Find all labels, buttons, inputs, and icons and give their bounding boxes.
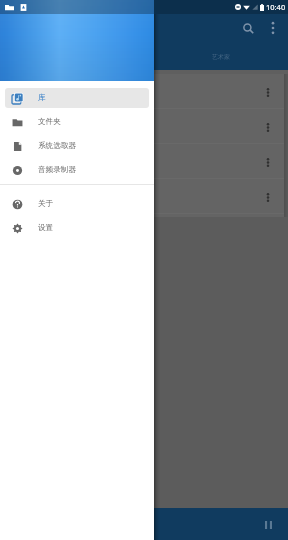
staticText: 关于 — [38, 199, 54, 209]
button[interactable]: 艺术家 — [142, 46, 288, 68]
button[interactable]: Search — [234, 14, 262, 42]
button[interactable]: 音频录制器 — [5, 160, 149, 180]
button[interactable]: 关于 — [5, 194, 149, 214]
button[interactable] — [0, 144, 288, 179]
staticText: 艺术家 — [212, 53, 230, 61]
staticText: 10:40 — [266, 2, 286, 12]
button[interactable]: More options — [259, 14, 287, 42]
staticText: 设置 — [38, 223, 54, 233]
button[interactable]: 系统选取器 — [5, 136, 149, 156]
button[interactable] — [0, 179, 288, 214]
button[interactable]: Pause — [255, 511, 282, 538]
button[interactable] — [0, 74, 288, 109]
button[interactable]: 设置 — [5, 218, 149, 238]
button[interactable]: 文件夹 — [5, 112, 149, 132]
staticText: 系统选取器 — [38, 141, 76, 151]
button[interactable] — [0, 109, 288, 144]
staticText: 文件夹 — [38, 117, 61, 127]
button[interactable]: 库 — [5, 88, 149, 108]
staticText: 库 — [38, 93, 46, 103]
staticText: 音频录制器 — [38, 165, 76, 175]
